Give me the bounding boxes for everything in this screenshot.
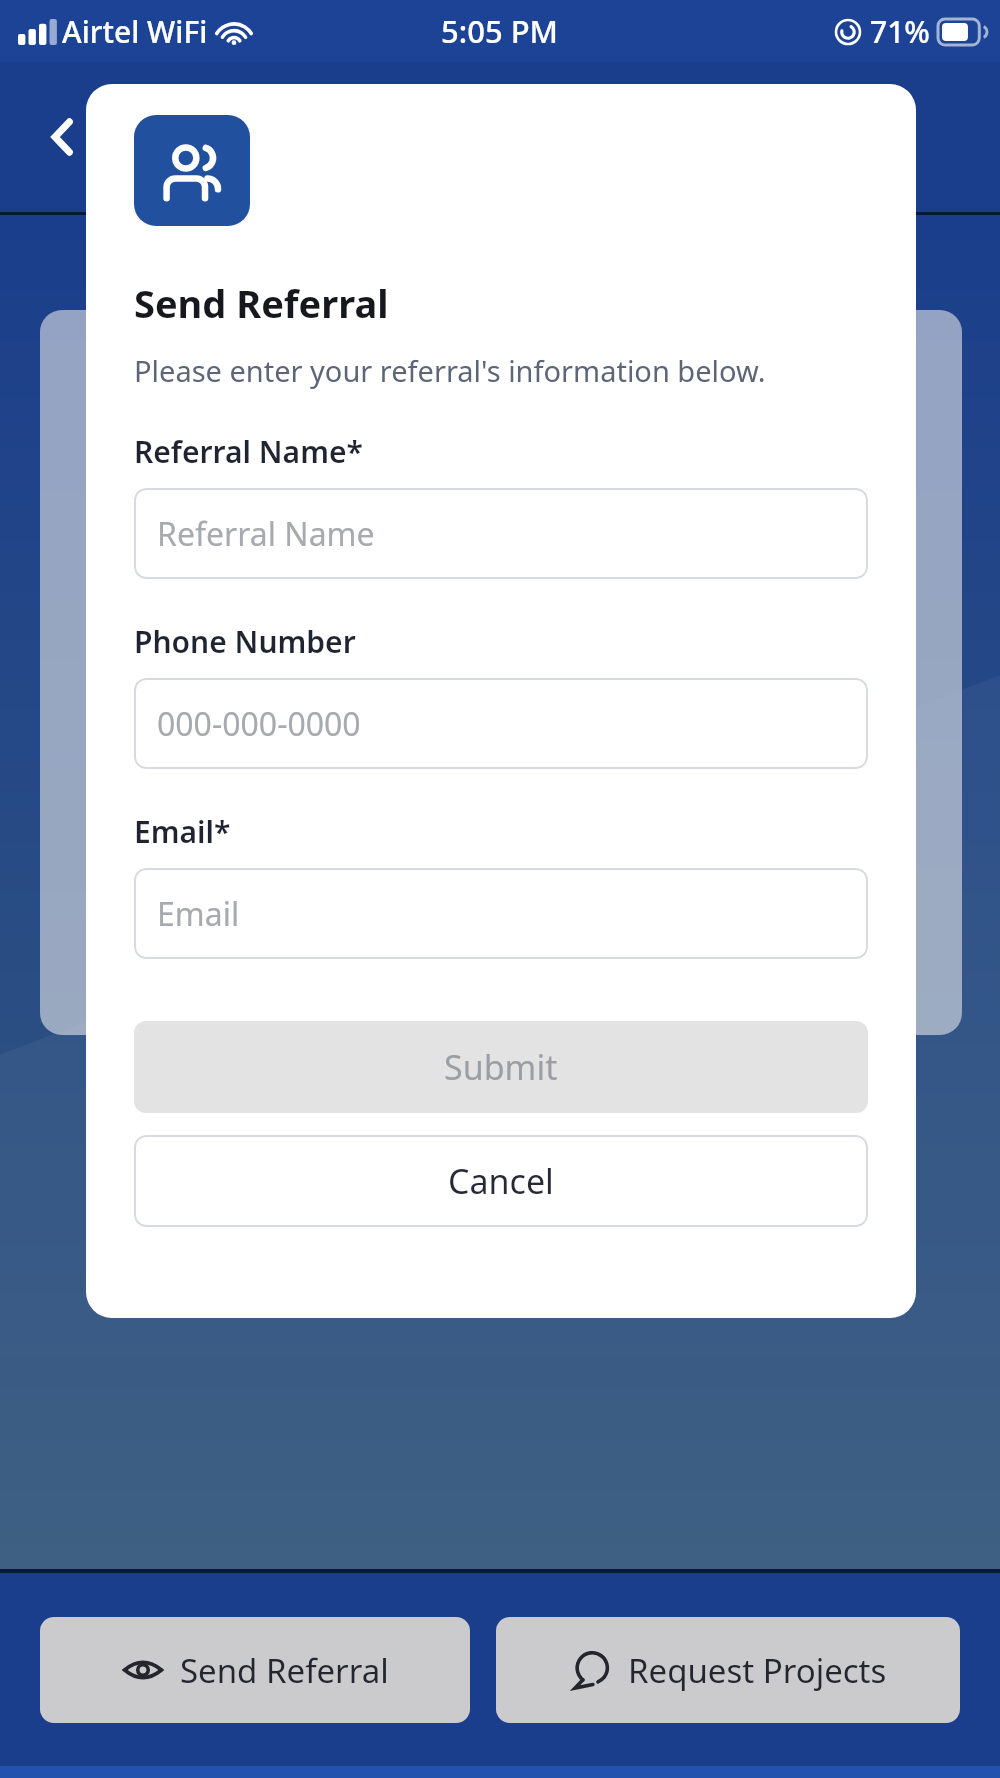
staticText: Please enter your referral's information…: [134, 351, 766, 390]
staticText: 000-000-0000: [157, 702, 361, 746]
staticText: Request Projects: [628, 1648, 887, 1693]
staticText: 5:05 PM: [441, 10, 559, 52]
staticText: Send Referral: [134, 277, 389, 329]
button[interactable]: 000-000-0000: [134, 678, 868, 769]
button[interactable]: Send Referral: [40, 1617, 470, 1723]
staticText: Referral Name: [157, 512, 375, 556]
staticText: Airtel WiFi: [62, 11, 208, 52]
other: Request Projects: [570, 1649, 612, 1691]
staticText: 71%: [870, 11, 930, 52]
staticText: Cancel: [448, 1158, 554, 1204]
staticText: Send Referral: [180, 1648, 389, 1693]
staticText: Referral Name*: [134, 431, 363, 472]
staticText: Email: [157, 892, 240, 936]
button[interactable]: Back: [26, 100, 100, 174]
staticText: Phone Number: [134, 621, 356, 662]
button[interactable]: Referral Name: [134, 488, 868, 579]
staticText: Email*: [134, 811, 231, 852]
other: Send Referral: [122, 1649, 164, 1691]
button[interactable]: Submit: [134, 1021, 868, 1113]
button[interactable]: Cancel: [134, 1135, 868, 1227]
staticText: Submit: [444, 1044, 558, 1090]
button[interactable]: Request Projects: [496, 1617, 960, 1723]
button[interactable]: Email: [134, 868, 868, 959]
